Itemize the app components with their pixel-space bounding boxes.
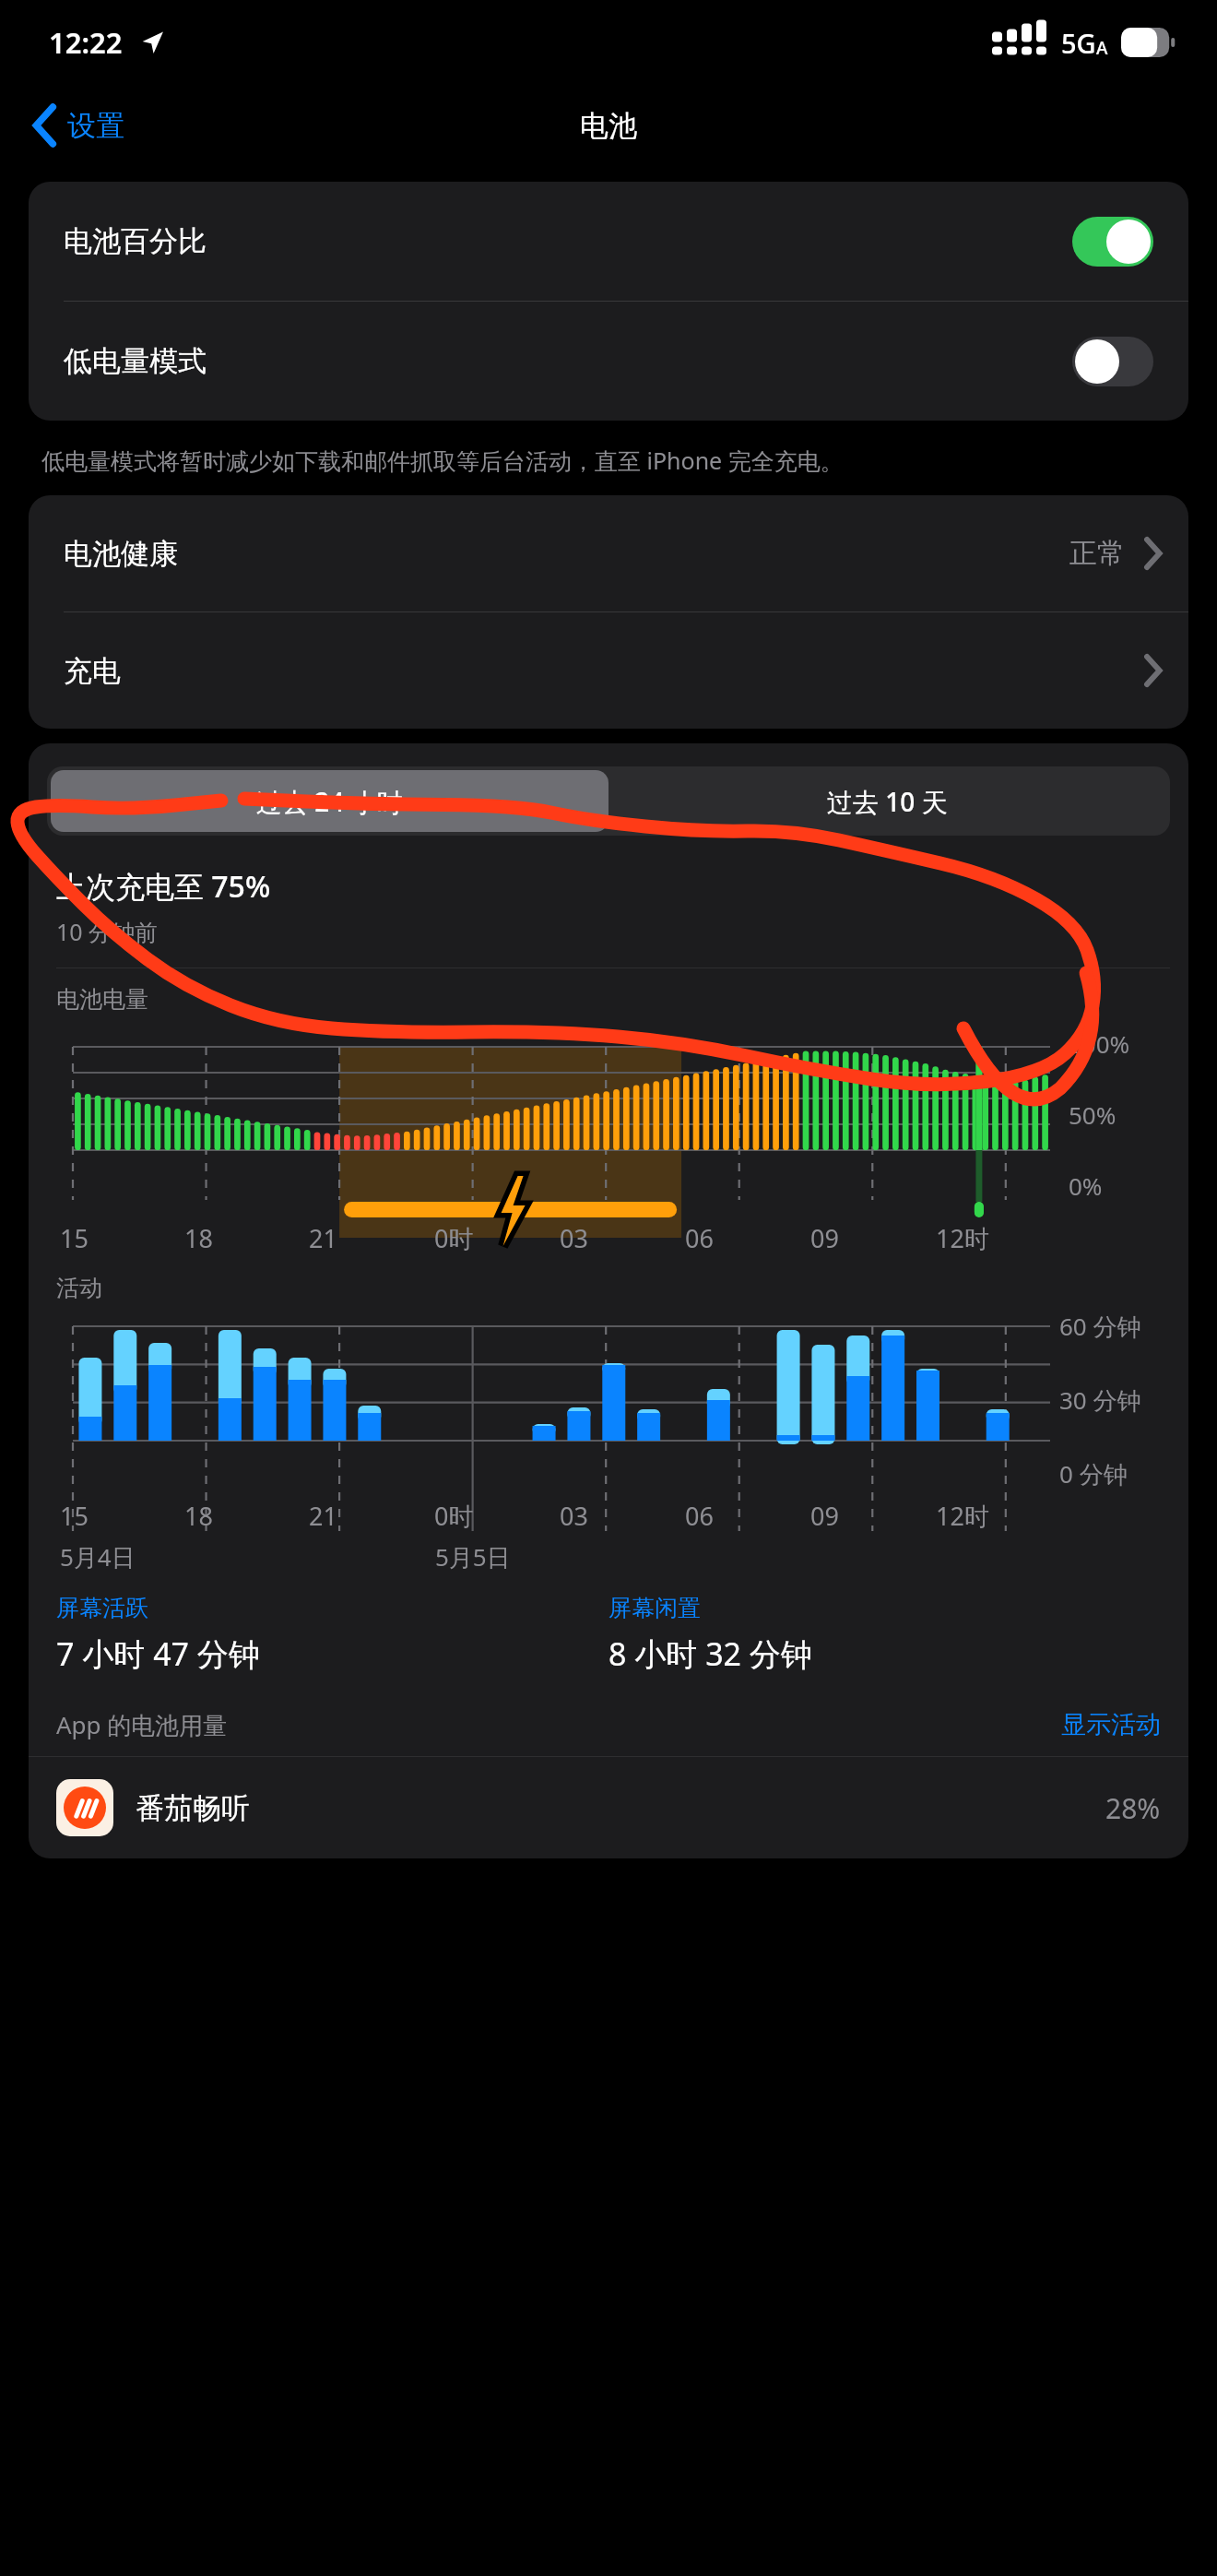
staticText: 06	[685, 1221, 714, 1255]
button[interactable]: 充电	[29, 612, 1188, 729]
staticText: 5G	[1061, 25, 1096, 61]
staticText: 03	[560, 1221, 588, 1255]
staticText: 12时	[936, 1221, 989, 1255]
button[interactable]: 显示活动	[1061, 1709, 1161, 1740]
staticText: 60 分钟	[1059, 1310, 1141, 1343]
button[interactable]: 番茄畅听	[29, 1757, 1188, 1858]
staticText: 30 分钟	[1059, 1383, 1141, 1417]
staticText: 18	[184, 1499, 213, 1533]
staticText: 8 小时 32 分钟	[608, 1632, 812, 1675]
button[interactable]: On	[1072, 217, 1153, 267]
staticText: 10 分钟前	[56, 916, 159, 947]
staticText: 电池电量	[56, 985, 148, 1014]
staticText: 设置	[67, 108, 124, 144]
button[interactable]: 低电量模式	[29, 302, 1188, 421]
staticText: 15	[60, 1499, 89, 1533]
staticText: A	[1096, 36, 1108, 60]
staticText: 100%	[1069, 1027, 1130, 1060]
staticText: 屏幕活跃	[56, 1594, 148, 1622]
staticText: 过去 10 天	[827, 784, 948, 819]
staticText: 28%	[1105, 1789, 1161, 1827]
staticText: 正常	[1069, 536, 1125, 571]
staticText: 电池	[580, 108, 637, 144]
staticText: 电池健康	[64, 536, 178, 572]
staticText: 5月4日	[60, 1540, 136, 1573]
button[interactable]: 电池百分比	[29, 182, 1188, 301]
staticText: 03	[560, 1499, 588, 1533]
staticText: 7 小时 47 分钟	[56, 1632, 260, 1675]
staticText: 21	[309, 1221, 337, 1255]
staticText: 50%	[1069, 1098, 1117, 1131]
staticText: 低电量模式	[64, 343, 207, 379]
staticText: 15	[60, 1221, 89, 1255]
staticText: 0时	[434, 1221, 474, 1255]
staticText: 上次充电至 75%	[56, 866, 271, 907]
button[interactable]: 电池健康	[29, 495, 1188, 611]
staticText: 12时	[936, 1499, 989, 1533]
staticText: 5月5日	[435, 1540, 511, 1573]
staticText: 21	[309, 1499, 337, 1533]
staticText: 12:22	[49, 23, 123, 62]
staticText: 18	[184, 1221, 213, 1255]
staticText: 充电	[64, 653, 121, 689]
staticText: 过去 24 小时	[256, 784, 403, 819]
button[interactable]: 过去 24 小时	[51, 770, 608, 832]
staticText: 低电量模式将暂时减少如下载和邮件抓取等后台活动，直至 iPhone 完全充电。	[41, 445, 844, 476]
staticText: 06	[685, 1499, 714, 1533]
staticText: 09	[810, 1499, 839, 1533]
staticText: 显示活动	[1061, 1709, 1161, 1740]
button[interactable]: 设置	[0, 100, 137, 151]
button[interactable]: 过去 10 天	[608, 770, 1166, 832]
staticText: 番茄畅听	[136, 1790, 250, 1826]
staticText: 0时	[434, 1499, 474, 1533]
staticText: 09	[810, 1221, 839, 1255]
staticText: 活动	[56, 1274, 102, 1302]
button[interactable]: Off	[1072, 337, 1153, 386]
staticText: 0 分钟	[1059, 1457, 1128, 1490]
staticText: 0%	[1069, 1169, 1103, 1202]
staticText: App 的电池用量	[56, 1708, 228, 1741]
staticText: 屏幕闲置	[608, 1594, 701, 1622]
staticText: 电池百分比	[64, 223, 207, 259]
